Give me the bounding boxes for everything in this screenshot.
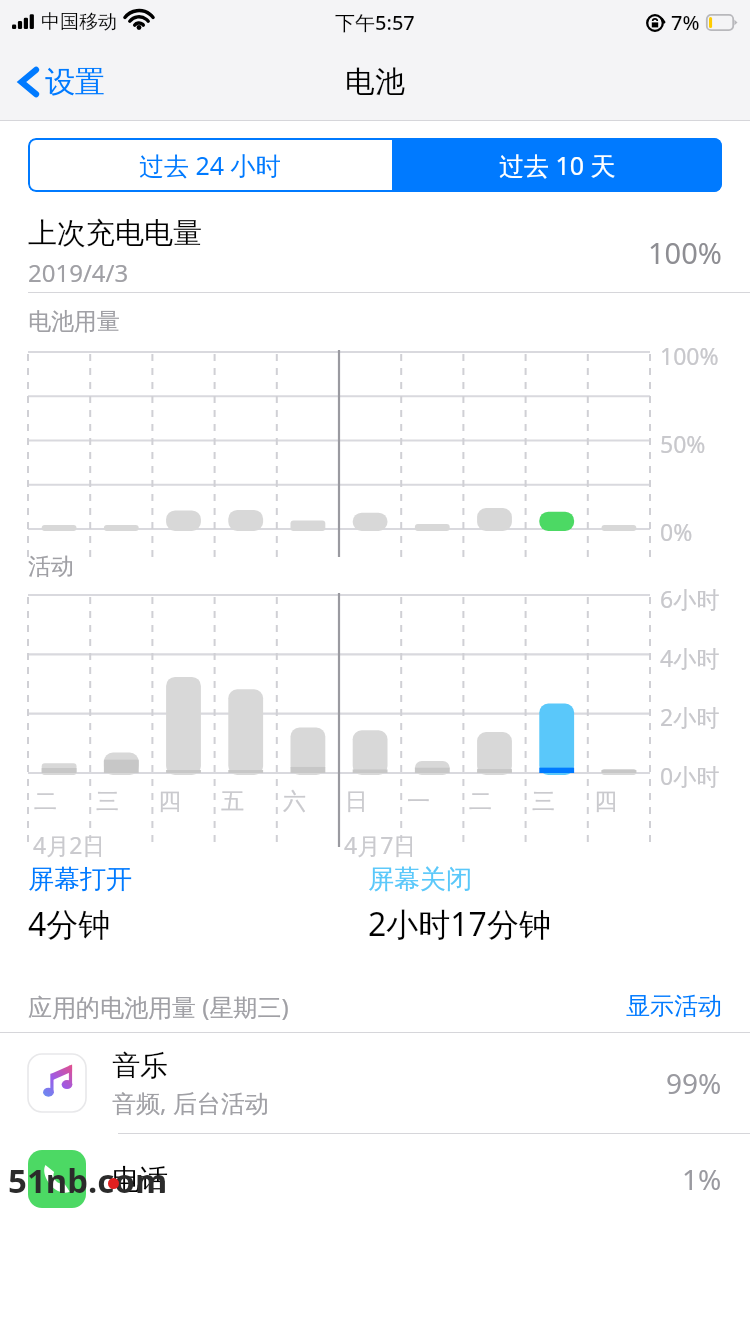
staticText: 2019/4/3 bbox=[28, 256, 129, 289]
staticText: 显示活动 bbox=[626, 991, 722, 1021]
staticText: 51nb.com bbox=[8, 1158, 168, 1203]
staticText: 4月7日 bbox=[344, 829, 417, 860]
staticText: 三 bbox=[96, 787, 119, 816]
staticText: 1% bbox=[682, 1160, 722, 1198]
staticText: 电池用量 bbox=[28, 307, 120, 336]
staticText: 0% bbox=[660, 516, 693, 547]
staticText: 活动 bbox=[28, 552, 74, 581]
staticText: 一 bbox=[407, 787, 430, 816]
staticText: 中国移动 bbox=[41, 10, 117, 34]
staticText: 50% bbox=[660, 428, 706, 459]
staticText: 设置 bbox=[45, 63, 105, 101]
staticText: 音频, 后台活动 bbox=[112, 1086, 269, 1119]
button[interactable]: 电话 bbox=[0, 1134, 750, 1224]
staticText: 三 bbox=[532, 787, 555, 816]
staticText: 4月2日 bbox=[33, 829, 106, 860]
staticText: 电话 bbox=[112, 1162, 682, 1197]
button[interactable]: 音乐 bbox=[0, 1033, 750, 1133]
staticText: 屏幕打开 bbox=[28, 863, 132, 896]
staticText: 2小时 bbox=[660, 701, 720, 732]
staticText: 应用的电池用量 (星期三) bbox=[28, 990, 626, 1023]
staticText: 过去 24 小时 bbox=[139, 148, 281, 182]
staticText: 过去 10 天 bbox=[499, 148, 616, 182]
button[interactable]: 过去 10 天 bbox=[392, 138, 722, 192]
staticText: 电池 bbox=[345, 63, 405, 101]
staticText: 4分钟 bbox=[28, 902, 111, 946]
staticText: 四 bbox=[158, 787, 181, 816]
staticText: 四 bbox=[594, 787, 617, 816]
staticText: 0小时 bbox=[660, 760, 720, 791]
button[interactable]: 过去 24 小时 bbox=[28, 138, 392, 192]
staticText: 五 bbox=[221, 787, 244, 816]
staticText: 二 bbox=[469, 787, 492, 816]
staticText: 音乐 bbox=[112, 1048, 168, 1083]
button[interactable]: 设置 bbox=[14, 57, 109, 107]
staticText: 100% bbox=[648, 233, 722, 272]
staticText: 4小时 bbox=[660, 642, 720, 673]
staticText: 2小时17分钟 bbox=[368, 902, 551, 946]
staticText: 六 bbox=[283, 787, 306, 816]
staticText: 7% bbox=[671, 9, 700, 36]
staticText: 100% bbox=[660, 340, 719, 371]
staticText: 二 bbox=[34, 787, 57, 816]
staticText: 上次充电电量 bbox=[28, 215, 202, 252]
staticText: 屏幕关闭 bbox=[368, 863, 472, 896]
staticText: 日 bbox=[345, 787, 368, 816]
staticText: 下午5:57 bbox=[335, 9, 415, 36]
button[interactable]: 显示活动 bbox=[626, 991, 722, 1021]
staticText: 6小时 bbox=[660, 583, 720, 614]
staticText: 99% bbox=[666, 1064, 722, 1102]
